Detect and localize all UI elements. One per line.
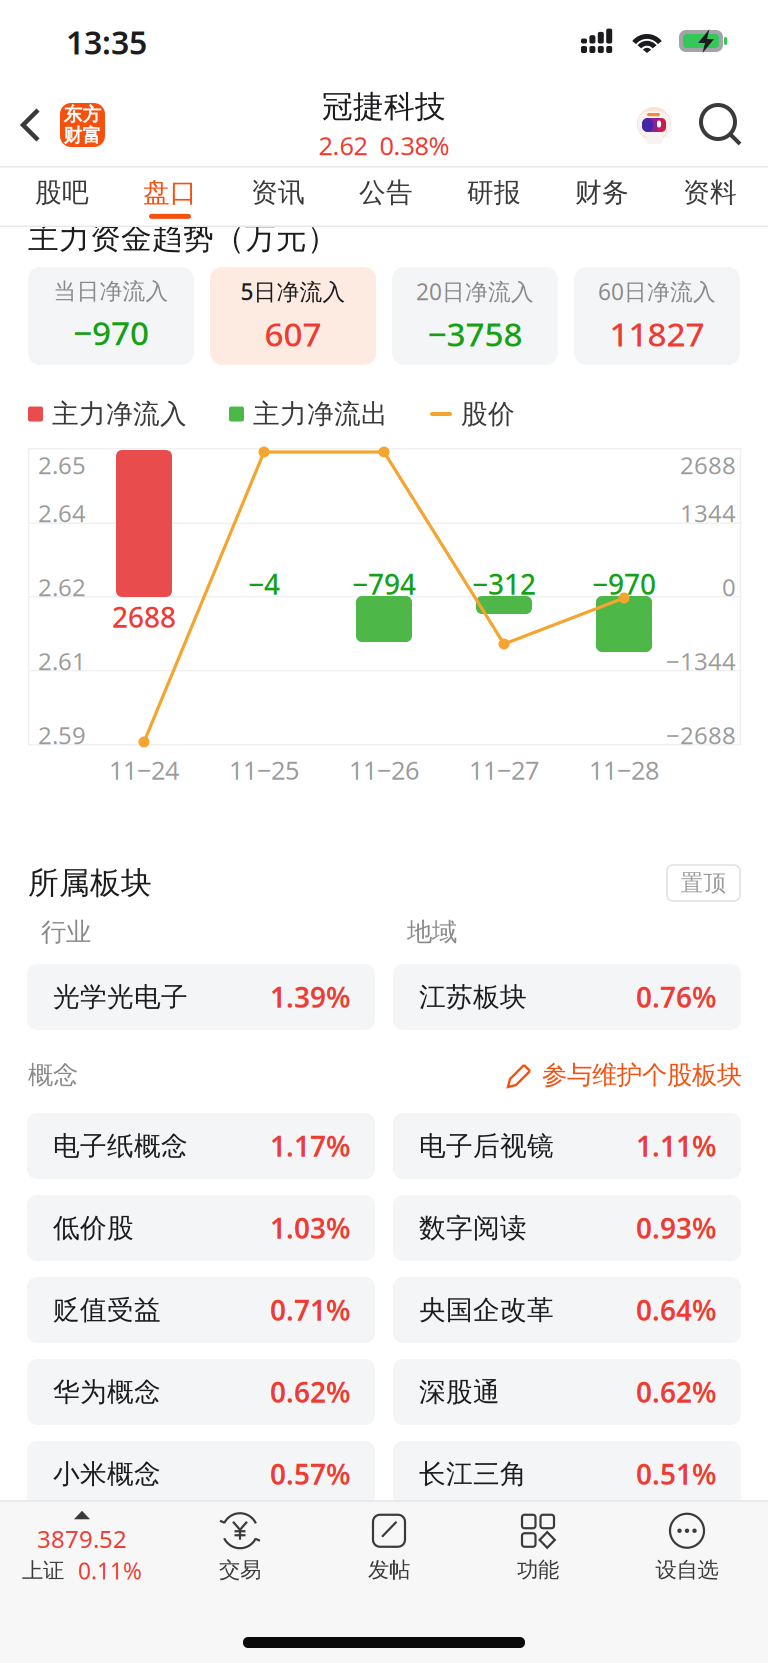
button[interactable]: 江苏板块 bbox=[393, 964, 741, 1030]
staticText: 研报 bbox=[467, 176, 521, 209]
button[interactable]: 搜索 bbox=[696, 100, 746, 150]
button[interactable]: 发帖 bbox=[314, 1501, 463, 1601]
staticText: 2.64 bbox=[38, 497, 86, 529]
staticText: 20日净流入 bbox=[416, 276, 534, 306]
button[interactable]: 60日净流入 bbox=[574, 267, 740, 365]
button[interactable]: 股吧 bbox=[8, 167, 116, 225]
staticText: 主力净流出 bbox=[253, 398, 388, 430]
staticText: 0.64% bbox=[636, 1291, 717, 1329]
staticText: 2.62 bbox=[38, 571, 86, 603]
staticText: 公告 bbox=[359, 176, 413, 209]
button[interactable]: 功能 bbox=[463, 1501, 612, 1601]
staticText: 60日净流入 bbox=[598, 276, 716, 306]
button[interactable]: 光学光电子 bbox=[27, 964, 375, 1030]
button[interactable]: 20日净流入 bbox=[392, 267, 558, 365]
staticText: −970 bbox=[73, 310, 149, 355]
staticText: −1344 bbox=[666, 645, 736, 677]
staticText: −2688 bbox=[666, 719, 736, 751]
staticText: 0.51% bbox=[636, 1455, 717, 1493]
button[interactable]: 参与维护个股板块 bbox=[506, 1053, 742, 1097]
staticText: 财务 bbox=[575, 176, 629, 209]
button[interactable]: 财务 bbox=[548, 167, 656, 225]
staticText: 2.59 bbox=[38, 719, 86, 751]
staticText: 光学光电子 bbox=[53, 981, 188, 1013]
staticText: 11827 bbox=[609, 311, 704, 356]
button[interactable]: 深股通 bbox=[393, 1359, 741, 1425]
staticText: 0.76% bbox=[636, 978, 717, 1016]
staticText: 0 bbox=[722, 571, 736, 603]
staticText: 参与维护个股板块 bbox=[542, 1059, 742, 1090]
staticText: 上证 bbox=[22, 1558, 64, 1584]
staticText: 1344 bbox=[680, 497, 736, 529]
staticText: 13:35 bbox=[66, 21, 147, 63]
staticText: 0.11% bbox=[78, 1556, 142, 1586]
staticText: 功能 bbox=[517, 1557, 559, 1583]
staticText: 贬值受益 bbox=[53, 1294, 161, 1326]
button[interactable]: 贬值受益 bbox=[27, 1277, 375, 1343]
button[interactable]: 电子纸概念 bbox=[27, 1113, 375, 1179]
button[interactable]: 电子后视镜 bbox=[393, 1113, 741, 1179]
button[interactable]: 盘口 bbox=[116, 167, 224, 225]
staticText: 2688 bbox=[680, 449, 736, 481]
staticText: 江苏板块 bbox=[419, 981, 527, 1013]
staticText: 长江三角 bbox=[419, 1458, 527, 1490]
staticText: 1.03% bbox=[270, 1209, 351, 1247]
staticText: 概念 bbox=[28, 1059, 78, 1090]
button[interactable]: 央国企改革 bbox=[393, 1277, 741, 1343]
staticText: 东方 bbox=[63, 103, 101, 126]
staticText: 11−25 bbox=[229, 753, 299, 787]
button[interactable]: 资讯 bbox=[224, 167, 332, 225]
staticText: 主力净流入 bbox=[52, 398, 187, 430]
staticText: 0.71% bbox=[270, 1291, 351, 1329]
button[interactable]: 5日净流入 bbox=[210, 267, 376, 365]
staticText: −970 bbox=[592, 565, 656, 603]
button[interactable]: 东方财富 bbox=[60, 103, 105, 147]
staticText: 2.61 bbox=[38, 645, 86, 677]
staticText: 资料 bbox=[683, 176, 737, 209]
staticText: 1.11% bbox=[636, 1127, 717, 1165]
button[interactable]: 智能助手 bbox=[630, 101, 678, 149]
staticText: 0.93% bbox=[636, 1209, 717, 1247]
staticText: 2688 bbox=[112, 598, 176, 636]
staticText: 所属板块 bbox=[28, 864, 152, 902]
staticText: 小米概念 bbox=[53, 1458, 161, 1490]
staticText: 2.62 bbox=[318, 128, 367, 162]
staticText: 华为概念 bbox=[53, 1376, 161, 1408]
staticText: 11−27 bbox=[469, 753, 539, 787]
staticText: 行业 bbox=[41, 916, 91, 947]
staticText: 0.62% bbox=[270, 1373, 351, 1411]
staticText: 当日净流入 bbox=[53, 277, 168, 305]
button[interactable]: 低价股 bbox=[27, 1195, 375, 1261]
staticText: −4 bbox=[248, 565, 280, 603]
staticText: −3758 bbox=[427, 311, 522, 356]
button[interactable]: 返回 bbox=[10, 95, 54, 155]
staticText: 0.62% bbox=[636, 1373, 717, 1411]
button[interactable]: 交易 bbox=[165, 1501, 314, 1601]
button[interactable]: 置顶 bbox=[667, 865, 740, 901]
staticText: 股吧 bbox=[35, 176, 89, 209]
staticText: 11−26 bbox=[349, 753, 419, 787]
button[interactable]: 华为概念 bbox=[27, 1359, 375, 1425]
button[interactable]: 资料 bbox=[656, 167, 764, 225]
staticText: 3879.52 bbox=[37, 1523, 127, 1555]
button[interactable]: 小米概念 bbox=[27, 1441, 375, 1507]
staticText: 盘口 bbox=[143, 176, 197, 209]
button[interactable]: 上证指数 3879.52 bbox=[0, 1501, 165, 1601]
button[interactable]: 当日净流入 bbox=[28, 267, 194, 365]
button[interactable]: 研报 bbox=[440, 167, 548, 225]
staticText: 5日净流入 bbox=[240, 276, 345, 306]
staticText: 低价股 bbox=[53, 1212, 134, 1244]
staticText: 地域 bbox=[407, 916, 457, 947]
staticText: −312 bbox=[472, 565, 536, 603]
staticText: 主力资金趋势（万元） bbox=[28, 219, 338, 257]
button[interactable]: 设自选 bbox=[612, 1501, 761, 1601]
staticText: 资讯 bbox=[251, 176, 305, 209]
button[interactable]: 公告 bbox=[332, 167, 440, 225]
button[interactable]: 长江三角 bbox=[393, 1441, 741, 1507]
staticText: 央国企改革 bbox=[419, 1294, 554, 1326]
button[interactable]: 数字阅读 bbox=[393, 1195, 741, 1261]
staticText: 深股通 bbox=[419, 1376, 500, 1408]
staticText: 2.65 bbox=[38, 449, 86, 481]
staticText: 11−28 bbox=[589, 753, 659, 787]
staticText: 置顶 bbox=[680, 869, 726, 897]
